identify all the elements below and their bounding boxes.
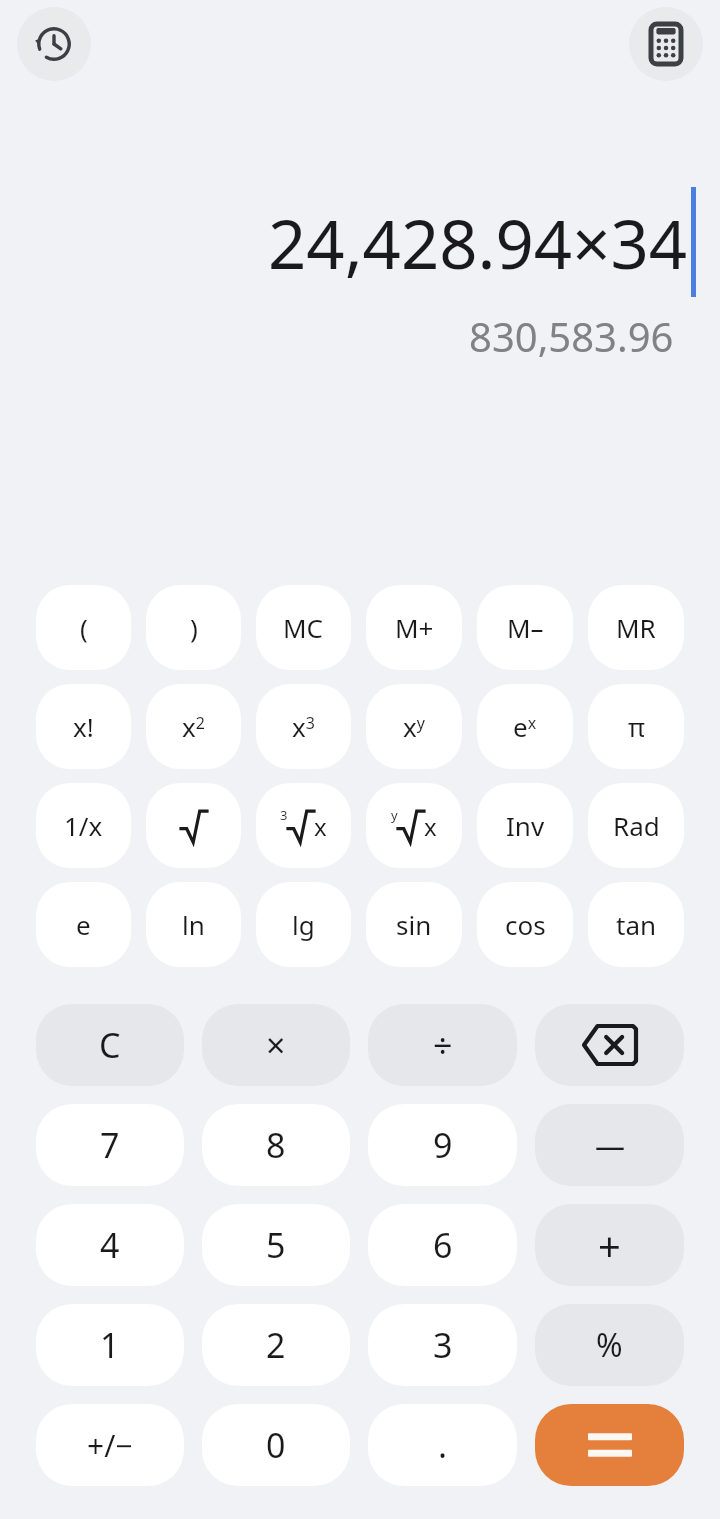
staticText: cos [505, 907, 546, 942]
staticText: 830,583.96 [469, 309, 674, 363]
staticText: x! [73, 709, 94, 744]
button[interactable]: History [17, 7, 91, 81]
staticText: ex [513, 709, 537, 744]
button[interactable]: ( [36, 585, 131, 670]
button[interactable]: ) [146, 585, 241, 670]
staticText: 4 [100, 1222, 120, 1268]
staticText: 1/x [64, 808, 103, 843]
staticText: 8 [266, 1122, 286, 1168]
button[interactable]: x3 [256, 684, 351, 769]
staticText: 7 [100, 1122, 120, 1168]
staticText: x2 [182, 709, 205, 744]
staticText: π [628, 709, 645, 744]
button[interactable]: xy [366, 684, 462, 769]
button[interactable]: 7 [36, 1104, 184, 1186]
button[interactable]: e [36, 882, 131, 967]
button[interactable]: x! [36, 684, 131, 769]
button[interactable]: Inv [477, 783, 573, 868]
button[interactable]: MC [256, 585, 351, 670]
button[interactable]: 9 [368, 1104, 517, 1186]
button[interactable]: tan [588, 882, 684, 967]
button[interactable]: cos [477, 882, 573, 967]
button[interactable]: ex [477, 684, 573, 769]
button[interactable]: π [588, 684, 684, 769]
button[interactable]: sin [366, 882, 462, 967]
staticText: 0 [266, 1422, 286, 1468]
staticText: ÷ [433, 1022, 453, 1068]
button[interactable]: x2 [146, 684, 241, 769]
staticText: ) [190, 610, 198, 645]
staticText: sin [396, 907, 432, 942]
button[interactable]: lg [256, 882, 351, 967]
staticText: +/− [87, 1425, 133, 1466]
staticText: e [76, 907, 91, 942]
staticText: . [438, 1422, 448, 1468]
staticText: C [99, 1022, 121, 1068]
button[interactable]: MR [588, 585, 684, 670]
button[interactable]: Calculator mode [629, 7, 703, 81]
staticText: 2 [266, 1322, 286, 1368]
button[interactable]: 8 [202, 1104, 350, 1186]
staticText: tan [616, 907, 657, 942]
button[interactable]: ÷ [368, 1004, 517, 1086]
staticText: xy [403, 709, 425, 744]
button[interactable]: + [535, 1204, 684, 1286]
button[interactable]: M+ [366, 585, 462, 670]
button[interactable]: 1/x [36, 783, 131, 868]
button[interactable]: Rad [588, 783, 684, 868]
staticText: x [314, 810, 327, 843]
button[interactable]: 3 [368, 1304, 517, 1386]
button[interactable]: % [535, 1304, 684, 1386]
button[interactable]: 3 [256, 783, 351, 868]
button[interactable]: — [535, 1104, 684, 1186]
button[interactable]: ln [146, 882, 241, 967]
staticText: M+ [395, 610, 434, 645]
button[interactable]: y [366, 783, 462, 868]
button[interactable]: 6 [368, 1204, 517, 1286]
staticText: × [266, 1022, 286, 1068]
button[interactable]: 2 [202, 1304, 350, 1386]
button[interactable]: M– [477, 585, 573, 670]
button[interactable]: 0 [202, 1404, 350, 1486]
button[interactable]: Equals [535, 1404, 684, 1486]
staticText: x3 [292, 709, 315, 744]
button[interactable]: . [368, 1404, 517, 1486]
staticText: MR [616, 610, 656, 645]
button[interactable]: Backspace [535, 1004, 684, 1086]
staticText: 3 [433, 1322, 453, 1368]
staticText: M– [507, 610, 544, 645]
staticText: + [598, 1218, 621, 1272]
button[interactable]: +/− [36, 1404, 184, 1486]
staticText: ( [80, 610, 88, 645]
button[interactable] [146, 783, 241, 868]
staticText: x [424, 810, 437, 843]
staticText: Inv [506, 808, 545, 843]
staticText: lg [292, 907, 315, 942]
staticText: 5 [266, 1222, 286, 1268]
staticText: Rad [613, 808, 660, 843]
button[interactable]: 4 [36, 1204, 184, 1286]
staticText: 3 [280, 806, 288, 824]
button[interactable]: 1 [36, 1304, 184, 1386]
button[interactable]: C [36, 1004, 184, 1086]
staticText: — [595, 1125, 625, 1166]
staticText: 6 [433, 1222, 453, 1268]
button[interactable]: 5 [202, 1204, 350, 1286]
staticText: 9 [433, 1122, 453, 1168]
staticText: 1 [100, 1322, 120, 1368]
button[interactable]: × [202, 1004, 350, 1086]
staticText: MC [283, 610, 324, 645]
staticText: 24,428.94×34 [268, 197, 688, 288]
staticText: ln [182, 907, 205, 942]
staticText: y [391, 806, 398, 824]
staticText: % [596, 1323, 623, 1367]
